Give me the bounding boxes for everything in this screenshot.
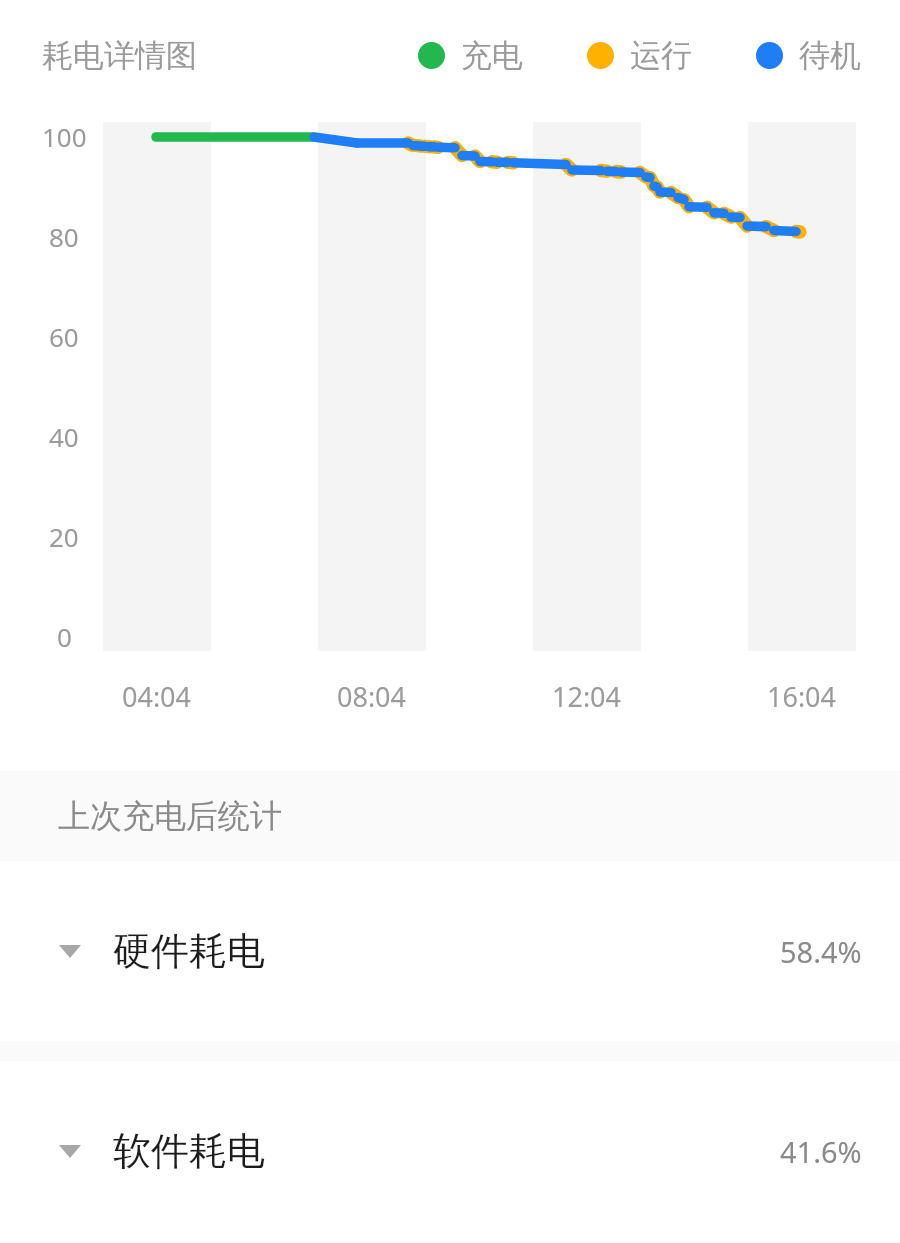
staticText: 软件耗电 <box>113 1127 265 1175</box>
other: Battery level chart <box>0 112 900 672</box>
staticText: 80 <box>49 219 79 254</box>
staticText: 41.6% <box>780 1132 862 1171</box>
staticText: 60 <box>49 319 79 354</box>
staticText: 待机 <box>799 36 861 75</box>
button[interactable]: 软件耗电 <box>0 1061 900 1241</box>
staticText: 耗电详情图 <box>42 36 197 75</box>
staticText: 12:04 <box>552 678 622 715</box>
button[interactable]: 待机 <box>756 36 861 75</box>
staticText: 16:04 <box>767 678 837 715</box>
staticText: 20 <box>49 519 79 554</box>
staticText: 硬件耗电 <box>113 927 265 975</box>
button[interactable]: 硬件耗电 <box>0 861 900 1041</box>
button[interactable]: 运行 <box>587 36 692 75</box>
staticText: 0 <box>57 619 72 654</box>
staticText: 运行 <box>630 36 692 75</box>
staticText: 08:04 <box>337 678 407 715</box>
staticText: 100 <box>42 119 87 154</box>
staticText: 58.4% <box>780 932 862 971</box>
button[interactable]: 充电 <box>418 36 523 75</box>
staticText: 上次充电后统计 <box>58 796 282 836</box>
staticText: 充电 <box>461 36 523 75</box>
staticText: 04:04 <box>122 678 192 715</box>
staticText: 40 <box>49 419 79 454</box>
